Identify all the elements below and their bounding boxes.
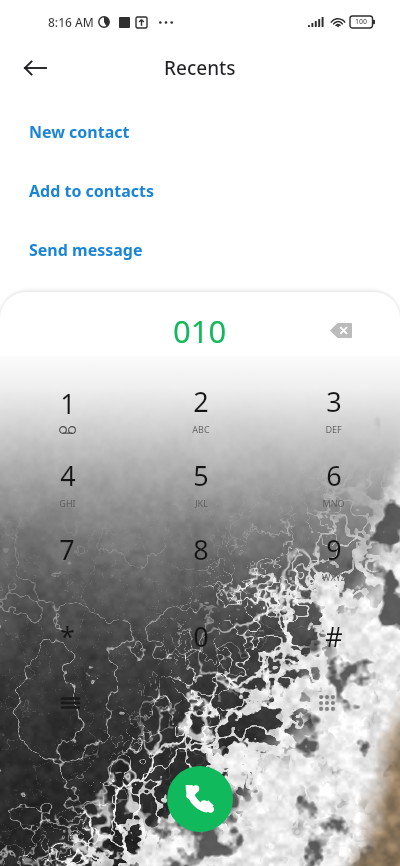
- button[interactable]: 5: [134, 451, 267, 525]
- staticText: 0: [193, 618, 209, 655]
- staticText: 100: [355, 17, 368, 27]
- staticText: WXYZ: [322, 571, 346, 583]
- staticText: Recents: [164, 55, 236, 81]
- staticText: 6: [326, 457, 342, 494]
- staticText: Add to contacts: [29, 180, 154, 202]
- staticText: New contact: [29, 121, 130, 143]
- button[interactable]: 3: [267, 377, 400, 451]
- staticText: 8: [193, 531, 209, 568]
- staticText: 9: [326, 531, 342, 568]
- staticText: #: [325, 618, 343, 655]
- staticText: 010: [173, 310, 227, 352]
- button[interactable]: Send message: [0, 220, 400, 279]
- staticText: MNO: [322, 497, 345, 509]
- staticText: 8:16 AM: [48, 14, 94, 30]
- staticText: TUV: [192, 571, 209, 583]
- staticText: PQRS: [55, 571, 79, 583]
- staticText: 1: [60, 385, 76, 422]
- staticText: 5: [193, 457, 209, 494]
- staticText: *: [60, 618, 75, 655]
- button[interactable]: 6: [267, 451, 400, 525]
- staticText: GHI: [59, 497, 76, 509]
- staticText: 2: [193, 383, 209, 420]
- button[interactable]: Menu: [53, 686, 87, 720]
- staticText: ABC: [192, 423, 210, 435]
- button[interactable]: 2: [134, 377, 267, 451]
- button[interactable]: New contact: [0, 102, 400, 161]
- button[interactable]: #: [267, 599, 400, 673]
- button[interactable]: Back: [16, 49, 54, 87]
- button[interactable]: Dialpad: [310, 686, 344, 720]
- button[interactable]: 1: [0, 377, 134, 451]
- button[interactable]: Backspace: [324, 313, 358, 347]
- staticText: 7: [59, 531, 75, 568]
- button[interactable]: Call: [167, 766, 233, 832]
- staticText: 4: [60, 457, 76, 494]
- button[interactable]: 8: [134, 525, 267, 599]
- button[interactable]: *: [0, 599, 134, 673]
- button[interactable]: Add to contacts: [0, 161, 400, 220]
- button[interactable]: 9: [267, 525, 400, 599]
- staticText: JKL: [195, 497, 208, 509]
- button[interactable]: 0: [134, 599, 267, 673]
- button[interactable]: 4: [0, 451, 134, 525]
- staticText: Send message: [29, 239, 143, 261]
- staticText: 3: [326, 383, 342, 420]
- staticText: DEF: [325, 423, 342, 435]
- button[interactable]: 7: [0, 525, 134, 599]
